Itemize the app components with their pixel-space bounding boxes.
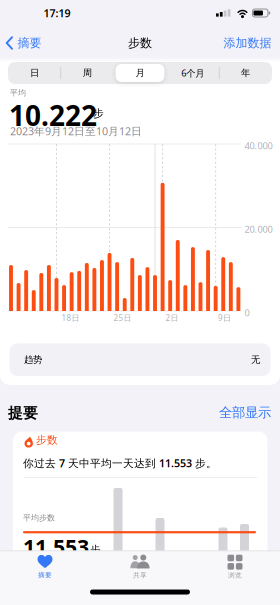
staticText: 10.222 xyxy=(9,96,97,134)
button[interactable]: 年 xyxy=(219,62,272,84)
staticText: 你过去 7 天中平均一天达到 11.553 步。 xyxy=(23,456,217,470)
button[interactable]: 趋势 xyxy=(9,343,270,376)
staticText: 步数 xyxy=(128,36,152,50)
staticText: 步数 xyxy=(36,433,58,447)
staticText: 月 xyxy=(135,67,144,79)
staticText: 20.000 xyxy=(244,223,272,235)
button[interactable]: 周 xyxy=(61,62,114,84)
staticText: 摘要 xyxy=(17,36,41,50)
button[interactable]: 摘要 xyxy=(5,36,41,50)
staticText: 25日 xyxy=(113,312,131,323)
button[interactable]: 摘要 xyxy=(5,546,85,588)
staticText: 趋势 xyxy=(24,354,42,365)
staticText: 步 xyxy=(90,543,101,557)
staticText: 2日 xyxy=(165,312,178,323)
button[interactable] xyxy=(13,431,267,558)
staticText: 6个月 xyxy=(181,67,204,79)
button[interactable]: 月 xyxy=(114,62,166,84)
staticText: 步 xyxy=(93,107,104,120)
button[interactable]: 6个月 xyxy=(166,62,219,84)
button[interactable]: 日 xyxy=(8,62,61,84)
staticText: 0 xyxy=(244,306,249,319)
staticText: 18日 xyxy=(61,312,79,323)
button[interactable]: 浏览 xyxy=(195,546,275,588)
staticText: 无 xyxy=(251,354,260,365)
staticText: 9日 xyxy=(218,312,231,323)
staticText: 2023年9月12日至10月12日 xyxy=(10,124,142,138)
staticText: 提要 xyxy=(8,404,38,422)
staticText: 日 xyxy=(30,67,39,79)
staticText: 共享 xyxy=(133,571,147,579)
staticText: 平均步数 xyxy=(23,513,55,523)
staticText: 添加数据 xyxy=(223,36,271,50)
staticText: 全部显示 xyxy=(219,404,271,421)
button[interactable]: 添加数据 xyxy=(223,36,271,50)
staticText: 年 xyxy=(241,67,250,79)
staticText: 11.553 xyxy=(23,532,89,561)
staticText: 周 xyxy=(83,67,92,79)
staticText: 17:19 xyxy=(43,6,70,20)
staticText: 40.000 xyxy=(244,139,272,152)
button[interactable]: 共享 xyxy=(100,546,180,588)
staticText: 平均 xyxy=(10,88,26,98)
staticText: 摘要 xyxy=(38,571,52,579)
button[interactable]: 全部显示 xyxy=(219,404,271,421)
staticText: 浏览 xyxy=(228,571,242,579)
